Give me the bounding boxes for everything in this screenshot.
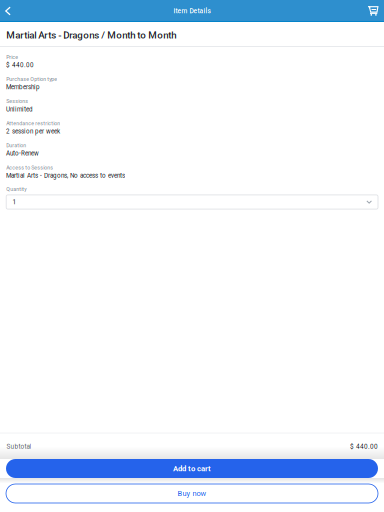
- staticText: Item Details: [173, 7, 210, 15]
- staticText: $ 440.00: [350, 443, 378, 450]
- staticText: Unlimited: [6, 106, 33, 113]
- staticText: Purchase Option type: [6, 76, 57, 82]
- staticText: Subtotal: [6, 443, 31, 450]
- button[interactable]: Back: [0, 0, 16, 22]
- button[interactable]: Add to cart: [6, 459, 378, 478]
- staticText: Martial Arts - Dragons, No access to eve…: [6, 172, 125, 179]
- staticText: $ 440.00: [6, 61, 34, 69]
- staticText: Sessions: [6, 98, 28, 104]
- staticText: Auto-Renew: [6, 150, 39, 157]
- staticText: Add to cart: [173, 464, 211, 473]
- staticText: Buy now: [177, 489, 206, 498]
- staticText: Access to Sessions: [6, 165, 53, 171]
- staticText: Quantity: [6, 186, 26, 192]
- button[interactable]: Buy now: [6, 484, 378, 503]
- staticText: 2 session per week: [6, 128, 60, 135]
- button[interactable]: Shopping cart: [362, 0, 384, 22]
- staticText: Attendance restriction: [6, 120, 60, 126]
- staticText: Martial Arts - Dragons / Month to Month: [6, 29, 176, 41]
- staticText: Membership: [6, 83, 40, 91]
- button[interactable]: 1: [6, 195, 378, 209]
- staticText: Duration: [6, 142, 26, 149]
- staticText: Price: [6, 54, 18, 60]
- staticText: 1: [13, 198, 17, 206]
